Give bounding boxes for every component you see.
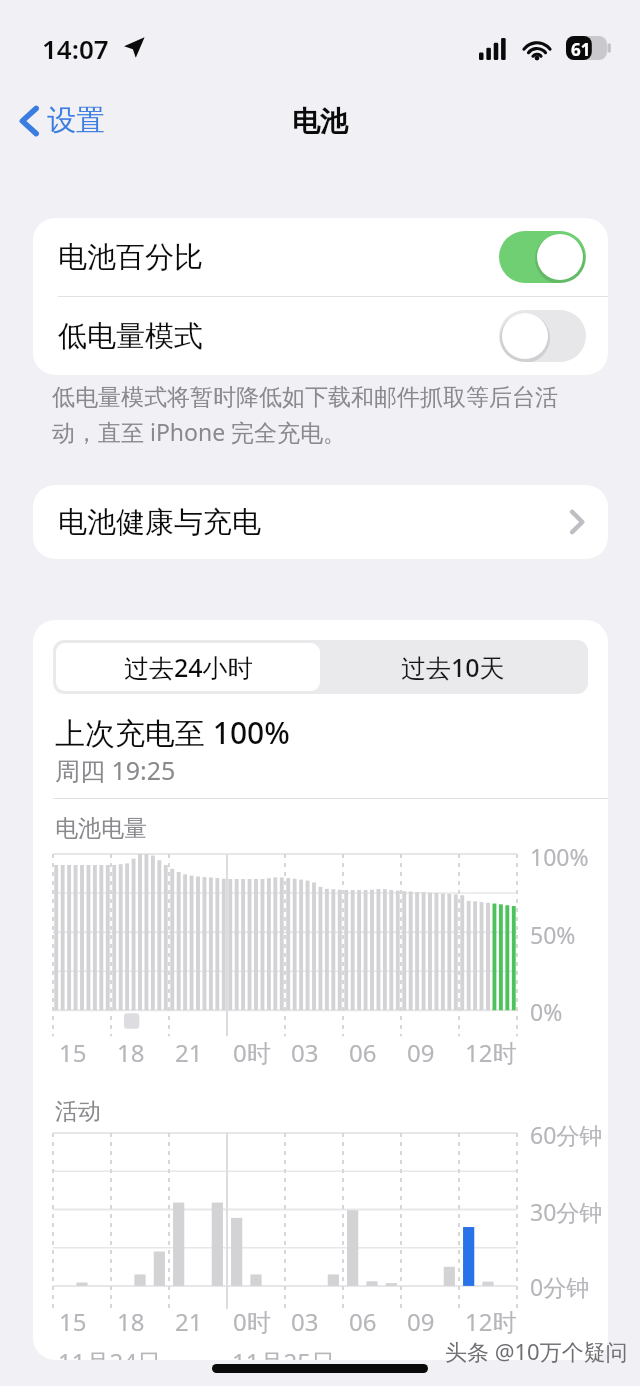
- staticText: 0%: [530, 996, 563, 1027]
- button[interactable]: 过去10天: [320, 643, 585, 691]
- button[interactable]: 电池健康与充电: [33, 485, 608, 559]
- staticText: 0分钟: [530, 1271, 590, 1302]
- staticText: 30分钟: [530, 1196, 603, 1227]
- staticText: 06: [349, 1036, 377, 1069]
- staticText: 12时: [465, 1036, 517, 1069]
- staticText: 周四 19:25: [55, 753, 176, 787]
- staticText: 06: [349, 1305, 377, 1338]
- staticText: 活动: [55, 1097, 101, 1126]
- staticText: 15: [59, 1036, 87, 1069]
- staticText: 50%: [530, 919, 576, 950]
- staticText: 21: [175, 1305, 203, 1338]
- staticText: 0时: [233, 1305, 271, 1338]
- staticText: 电池: [292, 104, 348, 139]
- button[interactable]: Switch on: [499, 231, 586, 283]
- staticText: 上次充电至 100%: [55, 712, 290, 753]
- staticText: 12时: [465, 1305, 517, 1338]
- staticText: 过去10天: [401, 650, 505, 684]
- staticText: 60分钟: [530, 1119, 603, 1150]
- staticText: 11月24日: [58, 1345, 161, 1360]
- staticText: 09: [407, 1036, 435, 1069]
- staticText: 14:07: [42, 31, 109, 66]
- staticText: 21: [175, 1036, 203, 1069]
- staticText: 09: [407, 1305, 435, 1338]
- staticText: 低电量模式: [58, 318, 203, 355]
- staticText: 100%: [530, 841, 589, 872]
- staticText: 低电量模式将暂时降低如下载和邮件抓取等后台活动，直至 iPhone 完全充电。: [52, 383, 600, 448]
- staticText: 过去24小时: [124, 650, 253, 684]
- button[interactable]: 电池百分比: [33, 218, 608, 296]
- staticText: 11月25日: [232, 1345, 335, 1360]
- staticText: 电池百分比: [58, 239, 203, 276]
- button[interactable]: 低电量模式: [33, 297, 608, 375]
- staticText: 头条 @10万个疑问: [445, 1336, 628, 1366]
- button[interactable]: Switch off: [499, 310, 586, 362]
- staticText: 电池健康与充电: [58, 504, 261, 541]
- staticText: 0时: [233, 1036, 271, 1069]
- staticText: 18: [117, 1036, 145, 1069]
- staticText: 15: [59, 1305, 87, 1338]
- button[interactable]: 过去24小时: [56, 643, 320, 691]
- staticText: 18: [117, 1305, 145, 1338]
- staticText: 61: [571, 38, 591, 61]
- button[interactable]: 设置: [12, 96, 113, 145]
- staticText: 03: [291, 1036, 319, 1069]
- staticText: 设置: [47, 102, 105, 139]
- staticText: 电池电量: [55, 814, 147, 843]
- staticText: 03: [291, 1305, 319, 1338]
